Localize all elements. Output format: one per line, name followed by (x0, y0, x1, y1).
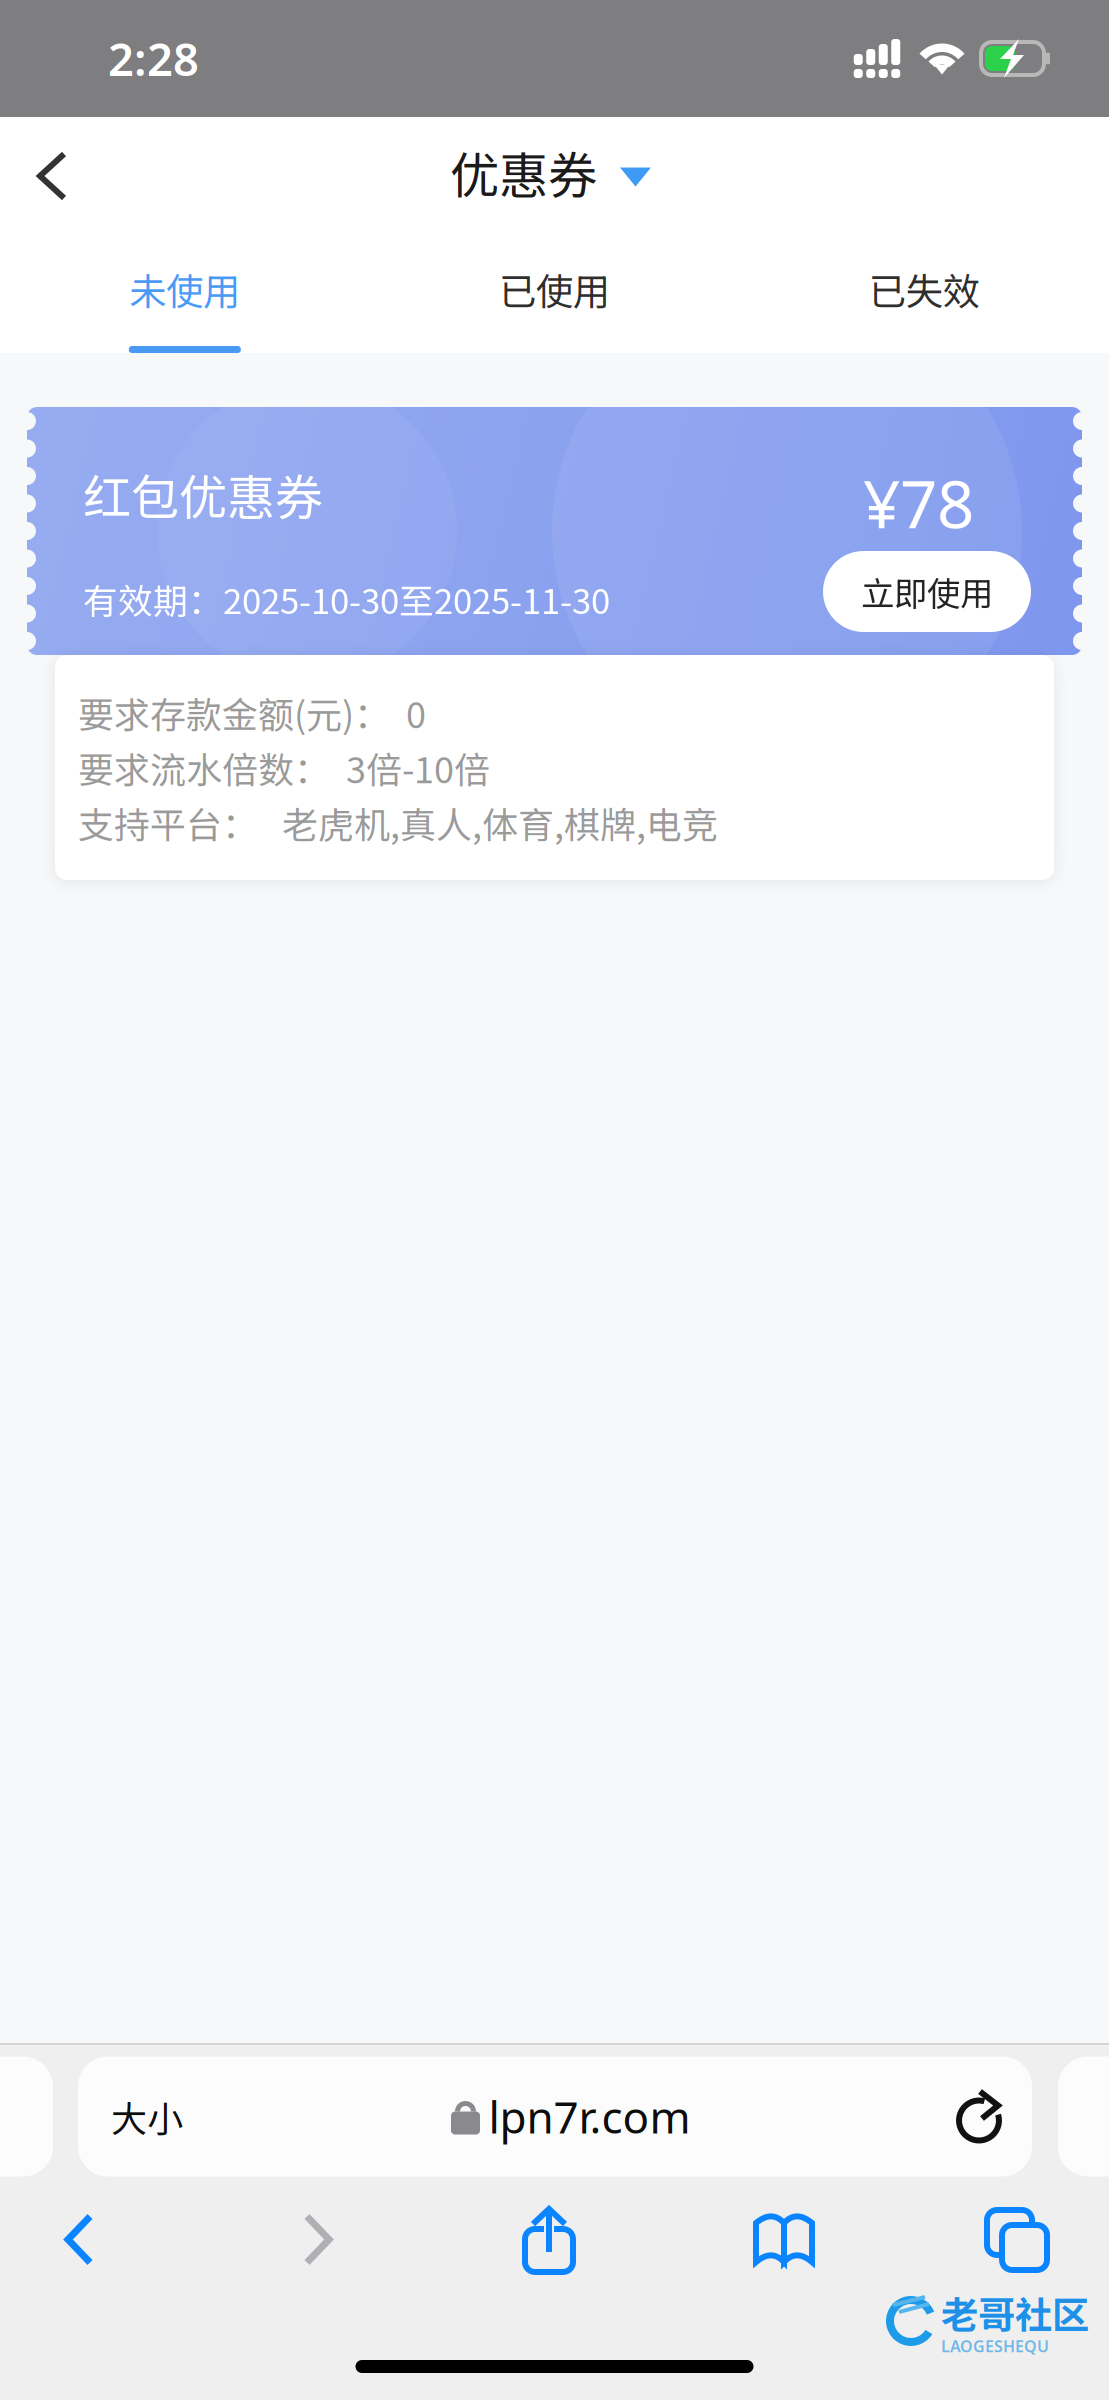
button[interactable]: 立即使用 (823, 551, 1031, 632)
staticText: LAOGESHEQU (941, 2335, 1049, 2357)
staticText: 支持平台： 老虎机,真人,体育,棋牌,电竞 (78, 796, 718, 848)
staticText: 立即使用 (861, 567, 993, 616)
button[interactable]: 已使用 (370, 235, 739, 353)
button[interactable]: Back (0, 2192, 160, 2288)
button[interactable]: 已失效 (739, 235, 1109, 353)
button[interactable]: 未使用 (0, 235, 370, 353)
staticText: 老哥社区 (941, 2285, 1089, 2339)
button[interactable]: Forward (160, 2192, 478, 2288)
staticText: 要求流水倍数： 3倍-10倍 (78, 741, 490, 793)
staticText: 要求存款金额(元)： 0 (78, 686, 426, 738)
staticText: 已使用 (499, 262, 610, 316)
staticText: lpn7r.com (488, 2087, 690, 2146)
staticText: 大小 (111, 2090, 183, 2142)
button[interactable]: Back (0, 118, 104, 234)
staticText: 优惠券 (450, 136, 597, 208)
button[interactable]: Bookmarks (620, 2192, 948, 2288)
staticText: ¥78 (863, 460, 974, 546)
staticText: 有效期：2025-10-30至2025-11-30 (83, 574, 610, 624)
staticText: 未使用 (129, 262, 240, 316)
staticText: 2:28 (108, 28, 199, 89)
button[interactable]: Tabs (948, 2192, 1086, 2288)
staticText: 红包优惠券 (83, 459, 323, 529)
button[interactable]: 大小 (78, 2056, 1032, 2176)
staticText: 已失效 (869, 262, 980, 316)
button[interactable]: Share (478, 2192, 620, 2288)
